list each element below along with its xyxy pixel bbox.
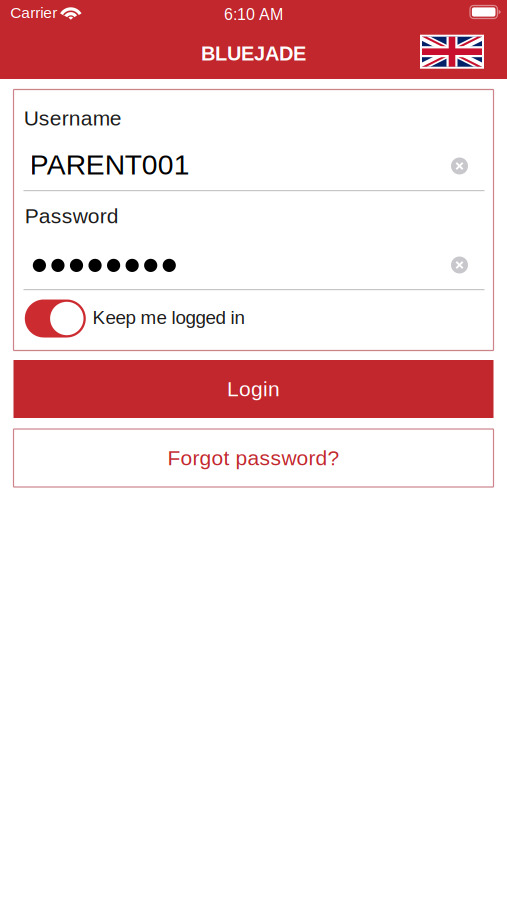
- staticText: BLUEJADE: [201, 42, 306, 65]
- button[interactable]: Forgot password?: [13, 429, 493, 487]
- staticText: Password: [25, 204, 119, 228]
- button[interactable]: Clear username: [451, 157, 468, 174]
- staticText: Carrier: [10, 4, 57, 21]
- button[interactable]: Select language: [420, 35, 484, 69]
- button[interactable]: Keep me logged in: [25, 298, 365, 338]
- staticText: 6:10 AM: [224, 5, 283, 23]
- staticText: Login: [227, 377, 280, 401]
- staticText: Forgot password?: [167, 446, 339, 470]
- staticText: PARENT001: [30, 149, 190, 180]
- button[interactable]: Login: [13, 360, 493, 418]
- button[interactable]: Clear password: [451, 256, 468, 273]
- staticText: Username: [24, 106, 122, 130]
- staticText: Keep me logged in: [92, 307, 244, 328]
